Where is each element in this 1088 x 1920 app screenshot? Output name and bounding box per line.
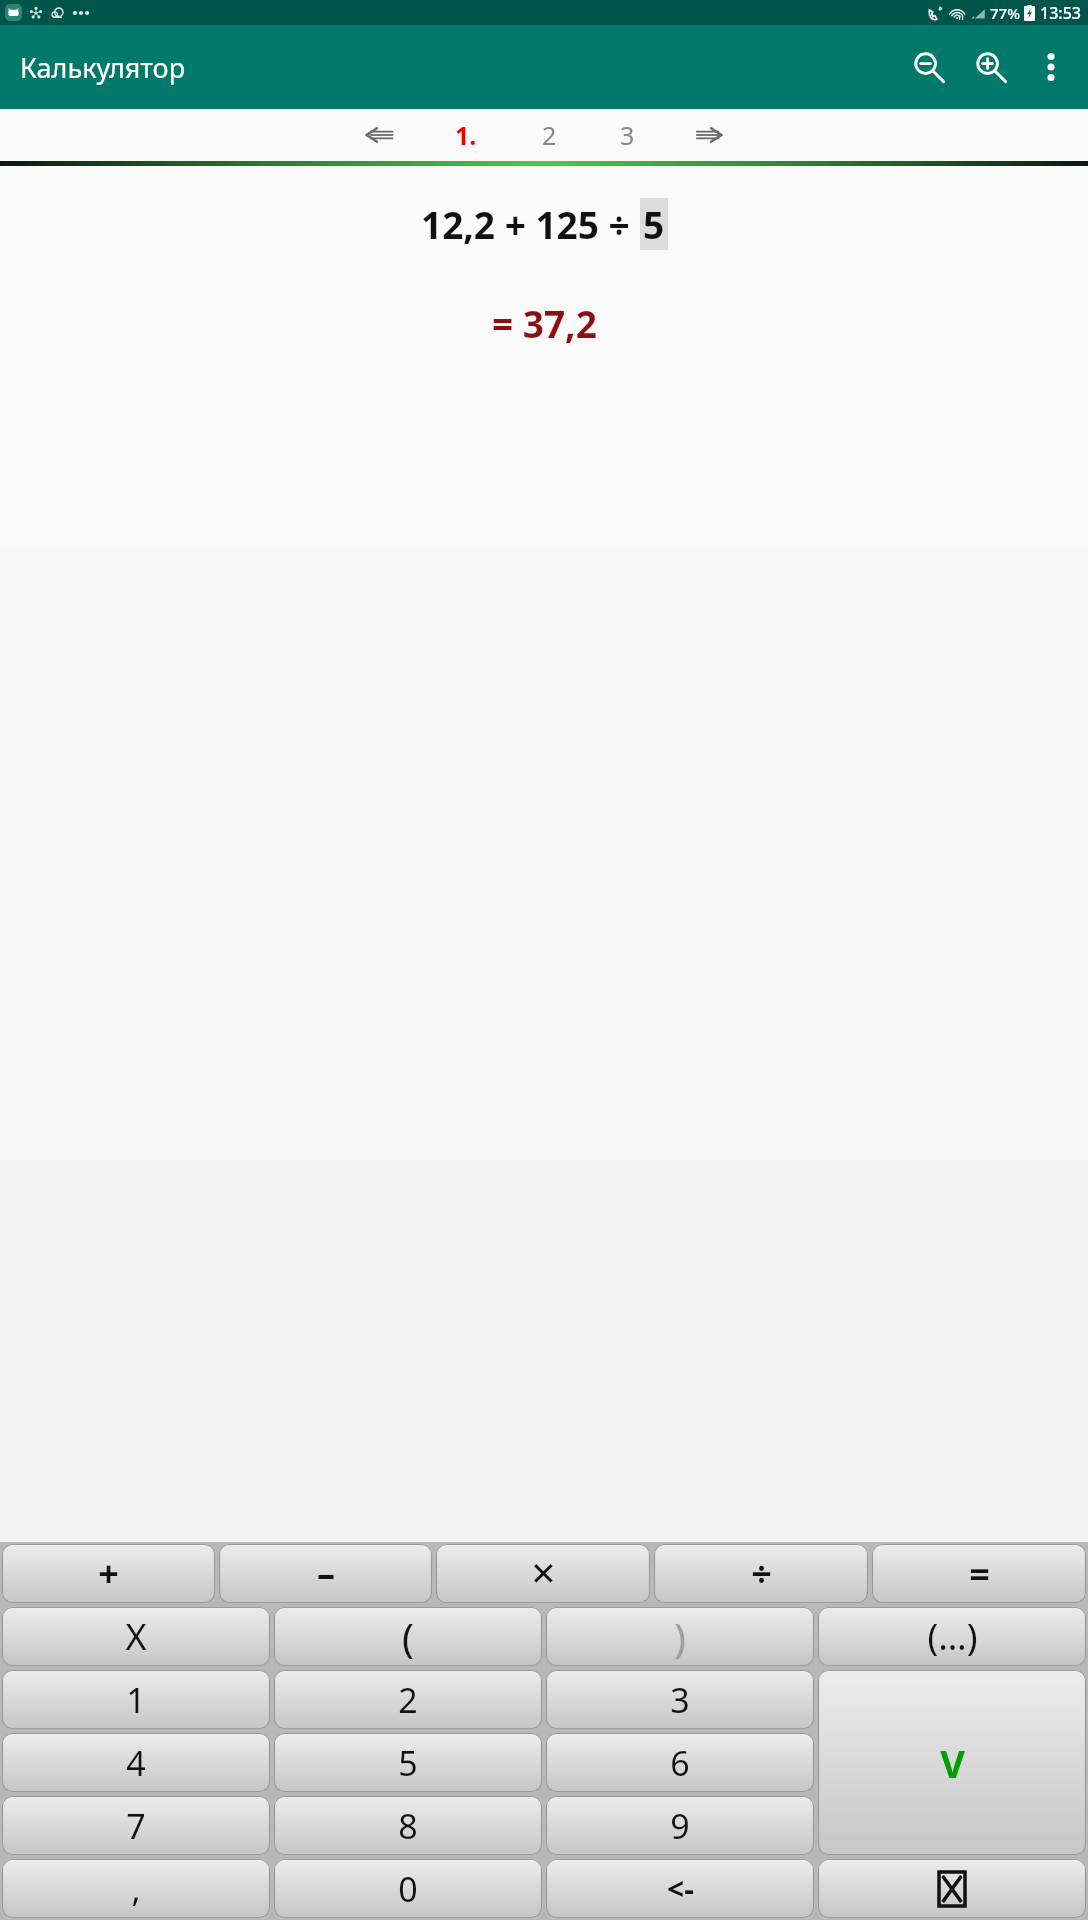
staticText: 3 xyxy=(620,118,635,152)
button[interactable]: 4 xyxy=(2,1733,270,1792)
staticText: 7 xyxy=(126,1803,146,1849)
staticText: + xyxy=(98,1549,119,1598)
staticText: 8 xyxy=(398,1803,418,1849)
staticText: 2 xyxy=(542,118,557,152)
button[interactable]: 7 xyxy=(2,1796,270,1855)
staticText: 1. xyxy=(455,118,477,152)
button[interactable]: 3 xyxy=(546,1670,814,1729)
staticText: V xyxy=(940,1737,965,1789)
staticText: = xyxy=(969,1549,990,1598)
button[interactable]: 1 xyxy=(2,1670,270,1729)
staticText: 13:53 xyxy=(1040,2,1081,24)
staticText: 3 xyxy=(670,1677,690,1723)
button[interactable]: – xyxy=(219,1544,432,1603)
staticText: 77% xyxy=(990,3,1020,23)
staticText: ( xyxy=(402,1610,414,1664)
staticText: , xyxy=(131,1866,141,1912)
button[interactable]: ( xyxy=(274,1607,542,1666)
button[interactable]: + xyxy=(2,1544,215,1603)
button[interactable]: Zoom in xyxy=(960,36,1022,98)
staticText: ✕ xyxy=(530,1555,557,1592)
button[interactable]: , xyxy=(2,1859,270,1918)
staticText: 1 xyxy=(126,1677,146,1723)
button[interactable]: 8 xyxy=(274,1796,542,1855)
staticText: = 37,2 xyxy=(492,298,597,348)
staticText: (…) xyxy=(927,1612,978,1661)
staticText: Калькулятор xyxy=(20,49,186,86)
button[interactable]: Clear all xyxy=(818,1859,1086,1918)
staticText: ) xyxy=(674,1610,686,1664)
button[interactable]: 9 xyxy=(546,1796,814,1855)
staticText: 12,2 + 125 ÷ xyxy=(421,199,640,249)
staticText: 5 xyxy=(398,1740,418,1786)
staticText: 4 xyxy=(126,1740,146,1786)
staticText: ÷ xyxy=(751,1549,772,1598)
button[interactable]: 3 xyxy=(602,109,652,161)
button[interactable]: 2 xyxy=(524,109,574,161)
button[interactable]: Next page xyxy=(674,109,740,161)
staticText: <- xyxy=(667,1868,694,1909)
staticText: X xyxy=(125,1612,147,1661)
staticText: 2 xyxy=(398,1677,418,1723)
button[interactable]: 5 xyxy=(274,1733,542,1792)
button[interactable]: More options xyxy=(1022,38,1080,96)
button[interactable]: ) xyxy=(546,1607,814,1666)
staticText: 9 xyxy=(670,1803,690,1849)
staticText: – xyxy=(317,1549,335,1598)
button[interactable]: = xyxy=(872,1544,1086,1603)
button[interactable]: X xyxy=(2,1607,270,1666)
button[interactable]: 2 xyxy=(274,1670,542,1729)
button[interactable]: <- xyxy=(546,1859,814,1918)
button[interactable]: (…) xyxy=(818,1607,1086,1666)
button[interactable]: V xyxy=(818,1670,1086,1855)
button[interactable]: 0 xyxy=(274,1859,542,1918)
button[interactable]: ÷ xyxy=(654,1544,868,1603)
staticText: 0 xyxy=(398,1866,418,1912)
button[interactable]: Zoom out xyxy=(898,36,960,98)
button[interactable]: Previous page xyxy=(348,109,414,161)
staticText: 6 xyxy=(670,1740,690,1786)
button[interactable]: 6 xyxy=(546,1733,814,1792)
button[interactable]: 1. xyxy=(438,109,494,161)
staticText: 5 xyxy=(643,199,665,249)
button[interactable]: ✕ xyxy=(436,1544,650,1603)
